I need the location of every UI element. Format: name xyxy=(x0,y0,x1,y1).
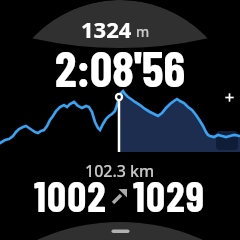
button[interactable]: 1002 xyxy=(34,170,206,220)
staticText: 2:08'56 xyxy=(55,38,186,97)
staticText: 1324 xyxy=(81,14,132,44)
button[interactable] xyxy=(218,86,240,109)
button[interactable]: 1324 xyxy=(81,14,150,44)
staticText: 102.3 km xyxy=(85,160,155,182)
staticText: 1002 xyxy=(34,170,107,220)
staticText: 1029 xyxy=(133,170,206,220)
staticText: m xyxy=(136,22,150,41)
